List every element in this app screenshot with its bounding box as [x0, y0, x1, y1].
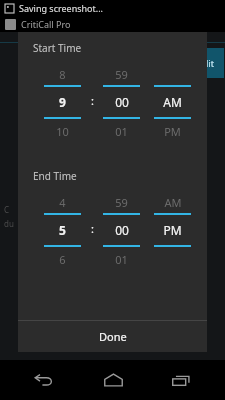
staticText: 5 [59, 222, 66, 238]
staticText: End Time [33, 169, 77, 183]
staticText: 00 [115, 222, 129, 238]
staticText: du [4, 218, 14, 229]
button[interactable]: 00 [99, 87, 144, 117]
staticText: Done [99, 329, 127, 344]
button[interactable]: Recent apps [156, 360, 206, 400]
button[interactable]: AM [150, 191, 195, 213]
button[interactable]: AM [150, 87, 195, 117]
button[interactable]: Back [19, 360, 69, 400]
button[interactable]: 5 [40, 215, 85, 245]
staticText: 59 [115, 67, 128, 82]
staticText: 59 [115, 195, 128, 210]
staticText: 01 [115, 252, 128, 267]
button[interactable]: 9 [40, 87, 85, 117]
staticText: AM [163, 94, 182, 110]
staticText: 10 [56, 124, 69, 139]
staticText: 4 [59, 195, 66, 210]
button[interactable]: 10 [40, 119, 85, 143]
staticText: lit [206, 57, 214, 69]
button[interactable]: 6 [40, 247, 85, 271]
button[interactable]: lit [196, 48, 224, 78]
button[interactable]: PM [150, 119, 195, 143]
button[interactable]: 01 [99, 247, 144, 271]
staticText: AM [164, 195, 182, 210]
button[interactable]: Done [18, 321, 207, 352]
staticText: 01 [115, 124, 128, 139]
button[interactable]: 00 [99, 215, 144, 245]
staticText: PM [164, 124, 181, 139]
staticText: : [91, 221, 94, 236]
button[interactable]: 59 [99, 63, 144, 85]
button[interactable]: 8 [40, 63, 85, 85]
staticText: 8 [59, 67, 66, 82]
button[interactable]: Home [88, 360, 138, 400]
button[interactable]: 4 [40, 191, 85, 213]
staticText: C [4, 204, 10, 215]
staticText: PM [163, 222, 182, 238]
button[interactable]: 59 [99, 191, 144, 213]
staticText: CritiCall Pro [21, 18, 71, 30]
button[interactable]: 01 [99, 119, 144, 143]
staticText: Saving screenshot... [19, 2, 104, 14]
staticText: Start Time [33, 41, 82, 55]
button[interactable]: PM [150, 215, 195, 245]
staticText: : [91, 93, 94, 108]
staticText: 6 [59, 252, 66, 267]
staticText: 00 [115, 94, 129, 110]
staticText: 9 [59, 94, 66, 110]
